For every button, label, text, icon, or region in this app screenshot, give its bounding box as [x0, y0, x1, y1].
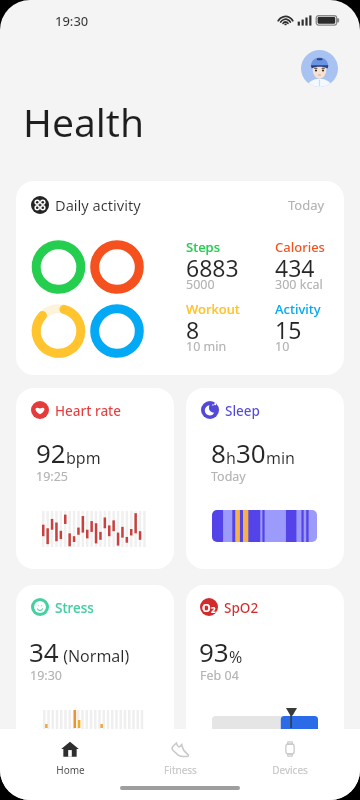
button[interactable]: Fitness [125, 729, 235, 776]
staticText: 34 [29, 634, 59, 669]
button[interactable]: O [186, 585, 344, 766]
staticText: 19:30 [55, 12, 89, 30]
staticText: Steps [186, 238, 220, 256]
staticText: Health [23, 95, 145, 148]
staticText: 434 [275, 252, 315, 283]
staticText: Home [56, 763, 85, 776]
staticText: 2 [211, 604, 216, 615]
staticText: 8 [211, 435, 226, 470]
staticText: 10 min [186, 338, 227, 355]
staticText: 8 [186, 314, 200, 345]
staticText: 15 [275, 314, 302, 345]
button[interactable]: Devices [235, 729, 345, 776]
button[interactable]: Heart rate [16, 388, 174, 569]
staticText: 93 [199, 634, 229, 669]
staticText: 30 [236, 435, 266, 470]
staticText: Devices [272, 763, 308, 776]
staticText: h [226, 447, 236, 469]
staticText: Sleep [225, 402, 260, 420]
staticText: 92 [36, 435, 66, 470]
button[interactable]: Daily activity [16, 181, 344, 375]
staticText: (Normal) [59, 645, 130, 667]
staticText: 10 [275, 338, 290, 355]
staticText: Daily activity [55, 195, 141, 215]
staticText: 300 kcal [275, 276, 323, 293]
staticText: min [266, 447, 295, 469]
staticText: bpm [66, 447, 101, 469]
staticText: 5000 [186, 276, 215, 293]
button[interactable]: Profile [301, 50, 338, 87]
staticText: Workout [186, 300, 240, 318]
staticText: Feb 04 [200, 667, 239, 684]
staticText: SpO2 [224, 599, 259, 617]
button[interactable]: Sleep [186, 388, 344, 569]
staticText: Fitness [164, 763, 197, 776]
staticText: 6883 [186, 252, 239, 283]
staticText: 19:25 [36, 468, 68, 485]
staticText: Today [211, 468, 246, 485]
staticText: Calories [275, 238, 325, 256]
staticText: Today [288, 196, 325, 214]
button[interactable]: Home [15, 729, 125, 776]
button[interactable]: Stress [16, 585, 174, 766]
staticText: Heart rate [55, 402, 122, 420]
staticText: Activity [275, 300, 321, 318]
staticText: O [202, 600, 211, 615]
staticText: % [229, 646, 243, 668]
staticText: Stress [55, 599, 94, 617]
staticText: 19:30 [30, 667, 62, 684]
